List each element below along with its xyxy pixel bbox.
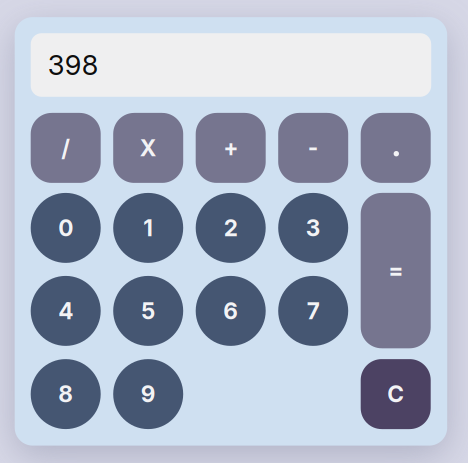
button[interactable]: 7 <box>278 276 348 346</box>
button[interactable]: 1 <box>113 193 183 263</box>
button[interactable]: 2 <box>196 193 266 263</box>
button[interactable]: Subtract <box>278 113 348 183</box>
button[interactable]: Multiply <box>113 113 183 183</box>
staticText: + <box>223 134 238 162</box>
staticText: 0 <box>58 214 73 242</box>
button[interactable]: 9 <box>113 359 183 429</box>
staticText: 4 <box>58 297 73 325</box>
button[interactable]: 8 <box>31 359 101 429</box>
staticText: 5 <box>141 297 155 325</box>
button[interactable]: 0 <box>31 193 101 263</box>
staticText: = <box>388 257 403 284</box>
button[interactable]: Clear <box>361 359 431 429</box>
button[interactable]: 4 <box>31 276 101 346</box>
staticText: 6 <box>223 297 238 325</box>
button[interactable]: 5 <box>113 276 183 346</box>
staticText: X <box>140 134 157 162</box>
button[interactable]: Divide <box>31 113 101 183</box>
button[interactable]: 6 <box>196 276 266 346</box>
button[interactable]: Decimal point <box>361 113 431 183</box>
button[interactable]: 3 <box>278 193 348 263</box>
staticText: 9 <box>141 380 156 408</box>
staticText: 398 <box>48 48 99 82</box>
staticText: 7 <box>307 297 320 325</box>
staticText: / <box>61 134 70 162</box>
staticText: 2 <box>224 214 238 242</box>
staticText: C <box>387 380 404 408</box>
staticText: 8 <box>58 380 73 408</box>
button[interactable]: Add <box>196 113 266 183</box>
staticText: - <box>308 134 319 162</box>
staticText: 3 <box>306 214 321 242</box>
button[interactable]: Equals <box>361 193 431 348</box>
staticText: 1 <box>143 214 153 242</box>
